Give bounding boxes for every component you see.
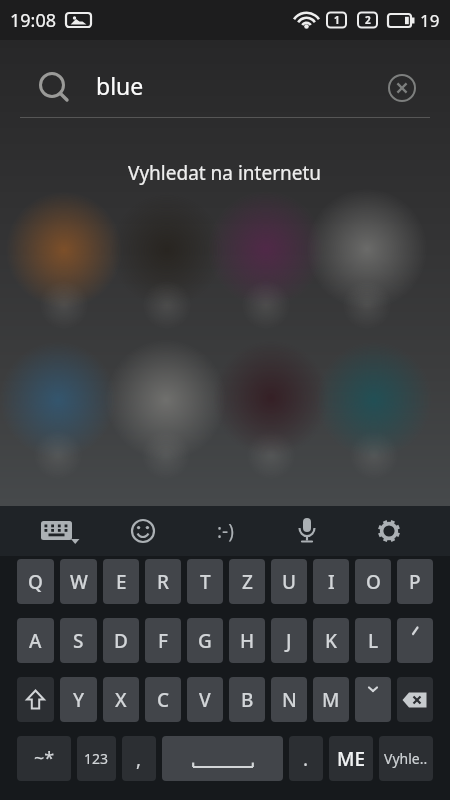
button[interactable]: D — [103, 618, 139, 663]
button[interactable]: C — [145, 677, 181, 722]
staticText: ~* — [34, 746, 55, 771]
staticText: M — [322, 687, 340, 713]
staticText: N — [282, 687, 297, 713]
staticText: C — [157, 687, 170, 713]
staticText: R — [157, 569, 170, 595]
button[interactable]: Z — [229, 559, 265, 604]
button[interactable]: F — [145, 618, 181, 663]
staticText: B — [241, 687, 254, 713]
button[interactable]: G — [187, 618, 223, 663]
button[interactable]: blue — [0, 58, 450, 117]
staticText: Vyhle.. — [384, 749, 428, 768]
staticText: J — [286, 628, 292, 654]
button[interactable] — [17, 677, 54, 722]
button[interactable]: E — [103, 559, 139, 604]
staticText: D — [114, 628, 128, 654]
staticText: Y — [73, 687, 85, 713]
button[interactable]: L — [355, 618, 391, 663]
staticText: blue — [96, 70, 144, 101]
button[interactable] — [376, 62, 428, 114]
button[interactable]: K — [313, 618, 349, 663]
staticText: Z — [242, 569, 253, 595]
button[interactable]: P — [397, 559, 433, 604]
staticText: A — [29, 628, 42, 654]
staticText: I — [328, 569, 335, 595]
staticText: ME — [337, 746, 366, 772]
staticText: Q — [28, 569, 43, 595]
button[interactable]: 123 — [77, 736, 116, 781]
button[interactable] — [355, 677, 391, 722]
button[interactable]: X — [103, 677, 139, 722]
button[interactable]: N — [271, 677, 307, 722]
staticText: 19:08 — [10, 8, 57, 33]
button[interactable] — [102, 506, 184, 556]
button[interactable]: ~* — [17, 736, 71, 781]
staticText: L — [368, 628, 379, 654]
button[interactable]: R — [145, 559, 181, 604]
staticText: G — [198, 628, 212, 654]
button[interactable] — [397, 618, 433, 663]
staticText: S — [73, 628, 84, 654]
button[interactable]: A — [17, 618, 54, 663]
button[interactable] — [397, 677, 433, 722]
button[interactable]: T — [187, 559, 223, 604]
button[interactable]: J — [271, 618, 307, 663]
staticText: 2 — [365, 13, 371, 27]
staticText: K — [325, 628, 338, 654]
staticText: P — [409, 569, 421, 595]
button[interactable]: Q — [17, 559, 54, 604]
button[interactable] — [20, 506, 102, 556]
staticText: . — [303, 746, 309, 772]
staticText: W — [70, 569, 88, 595]
staticText: , — [136, 746, 142, 772]
staticText: 123 — [84, 749, 109, 768]
staticText: V — [199, 687, 211, 713]
button[interactable]: M — [313, 677, 349, 722]
button[interactable]: ME — [329, 736, 373, 781]
staticText: X — [115, 687, 127, 713]
staticText: :-) — [217, 518, 234, 544]
button[interactable]: H — [229, 618, 265, 663]
button[interactable] — [162, 736, 283, 781]
button[interactable]: , — [122, 736, 156, 781]
button[interactable]: Vyhledat na internetu — [128, 160, 322, 186]
staticText: E — [116, 569, 127, 595]
button[interactable]: O — [355, 559, 391, 604]
button[interactable]: V — [187, 677, 223, 722]
button[interactable] — [266, 506, 348, 556]
staticText: H — [240, 628, 255, 654]
button[interactable]: W — [60, 559, 97, 604]
button[interactable]: S — [60, 618, 97, 663]
button[interactable]: Vyhle.. — [379, 736, 433, 781]
staticText: 1 — [334, 13, 340, 27]
button[interactable]: . — [289, 736, 323, 781]
staticText: 19 — [420, 9, 440, 32]
button[interactable]: :-) — [184, 506, 266, 556]
staticText: U — [282, 569, 297, 595]
button[interactable]: U — [271, 559, 307, 604]
staticText: T — [200, 569, 211, 595]
button[interactable]: B — [229, 677, 265, 722]
button[interactable]: I — [313, 559, 349, 604]
staticText: O — [366, 569, 381, 595]
button[interactable] — [348, 506, 430, 556]
staticText: F — [158, 628, 169, 654]
button[interactable]: Y — [60, 677, 97, 722]
